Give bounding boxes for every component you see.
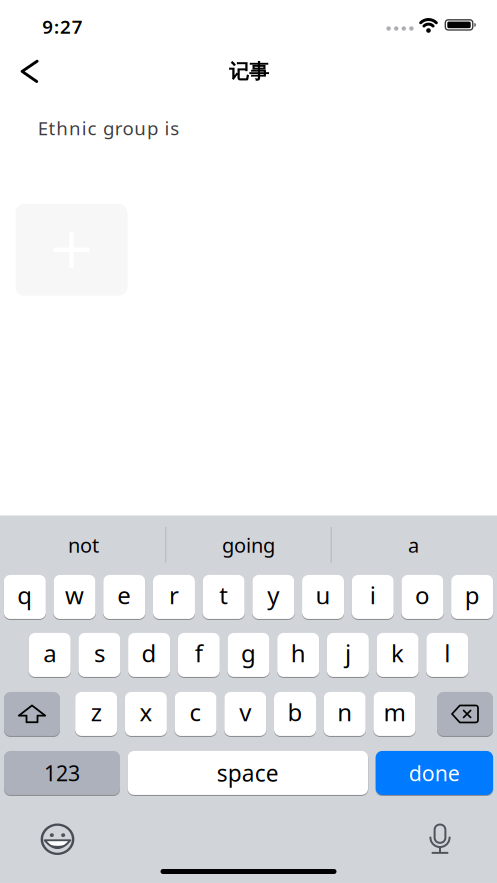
staticText: t bbox=[219, 579, 228, 611]
button[interactable]: e bbox=[103, 575, 145, 619]
staticText: v bbox=[239, 696, 251, 728]
staticText: k bbox=[391, 637, 404, 669]
staticText: 9:27 bbox=[42, 14, 83, 39]
staticText: r bbox=[169, 579, 179, 611]
staticText: c bbox=[190, 696, 202, 728]
staticText: u bbox=[315, 579, 330, 611]
staticText: p bbox=[465, 579, 480, 611]
staticText: b bbox=[287, 696, 302, 728]
button[interactable] bbox=[35, 817, 79, 861]
button[interactable]: m bbox=[373, 692, 415, 736]
staticText: j bbox=[345, 637, 351, 669]
button[interactable]: c bbox=[175, 692, 217, 736]
staticText: done bbox=[409, 759, 460, 787]
button[interactable]: j bbox=[327, 633, 369, 677]
staticText: m bbox=[383, 696, 405, 728]
button[interactable]: z bbox=[75, 692, 117, 736]
button[interactable]: h bbox=[277, 633, 319, 677]
button[interactable] bbox=[7, 49, 51, 93]
button[interactable]: going bbox=[168, 522, 328, 568]
staticText: 123 bbox=[44, 759, 80, 787]
staticText: i bbox=[370, 579, 376, 611]
button[interactable]: s bbox=[78, 633, 120, 677]
staticText: a bbox=[43, 637, 56, 669]
staticText: o bbox=[415, 579, 430, 611]
button[interactable]: u bbox=[302, 575, 344, 619]
button[interactable]: f bbox=[178, 633, 220, 677]
staticText: z bbox=[91, 696, 102, 728]
staticText: going bbox=[222, 532, 275, 558]
button[interactable]: b bbox=[274, 692, 316, 736]
staticText: w bbox=[65, 579, 84, 611]
button[interactable]: o bbox=[401, 575, 443, 619]
button[interactable]: q bbox=[4, 575, 46, 619]
button[interactable]: i bbox=[352, 575, 394, 619]
button[interactable]: v bbox=[224, 692, 266, 736]
staticText: e bbox=[117, 579, 131, 611]
button[interactable]: p bbox=[451, 575, 493, 619]
staticText: g bbox=[241, 637, 256, 669]
button[interactable] bbox=[418, 816, 462, 860]
staticText: Ethnic group is bbox=[38, 116, 179, 140]
staticText: x bbox=[139, 696, 152, 728]
button[interactable]: l bbox=[426, 633, 468, 677]
button[interactable]: t bbox=[203, 575, 245, 619]
button[interactable] bbox=[437, 692, 493, 736]
staticText: 记事 bbox=[229, 59, 269, 84]
staticText: f bbox=[195, 637, 203, 669]
button[interactable]: 123 bbox=[4, 751, 120, 795]
staticText: space bbox=[217, 758, 279, 788]
button[interactable]: g bbox=[227, 633, 269, 677]
button[interactable]: d bbox=[128, 633, 170, 677]
staticText: n bbox=[337, 696, 352, 728]
button[interactable]: a bbox=[29, 633, 71, 677]
staticText: h bbox=[291, 637, 306, 669]
staticText: l bbox=[444, 637, 450, 669]
button[interactable] bbox=[4, 692, 60, 736]
button[interactable]: y bbox=[252, 575, 294, 619]
staticText: not bbox=[68, 532, 99, 558]
button[interactable]: a bbox=[333, 522, 493, 568]
staticText: q bbox=[17, 579, 32, 611]
staticText: a bbox=[408, 532, 419, 558]
button[interactable]: x bbox=[125, 692, 167, 736]
button[interactable]: k bbox=[377, 633, 419, 677]
button[interactable]: w bbox=[53, 575, 95, 619]
button[interactable]: r bbox=[153, 575, 195, 619]
button[interactable]: not bbox=[3, 522, 163, 568]
button[interactable]: done bbox=[376, 751, 493, 795]
staticText: s bbox=[94, 637, 105, 669]
staticText: d bbox=[142, 637, 157, 669]
button[interactable]: space bbox=[128, 751, 368, 795]
staticText: y bbox=[267, 579, 279, 611]
button[interactable]: n bbox=[324, 692, 366, 736]
